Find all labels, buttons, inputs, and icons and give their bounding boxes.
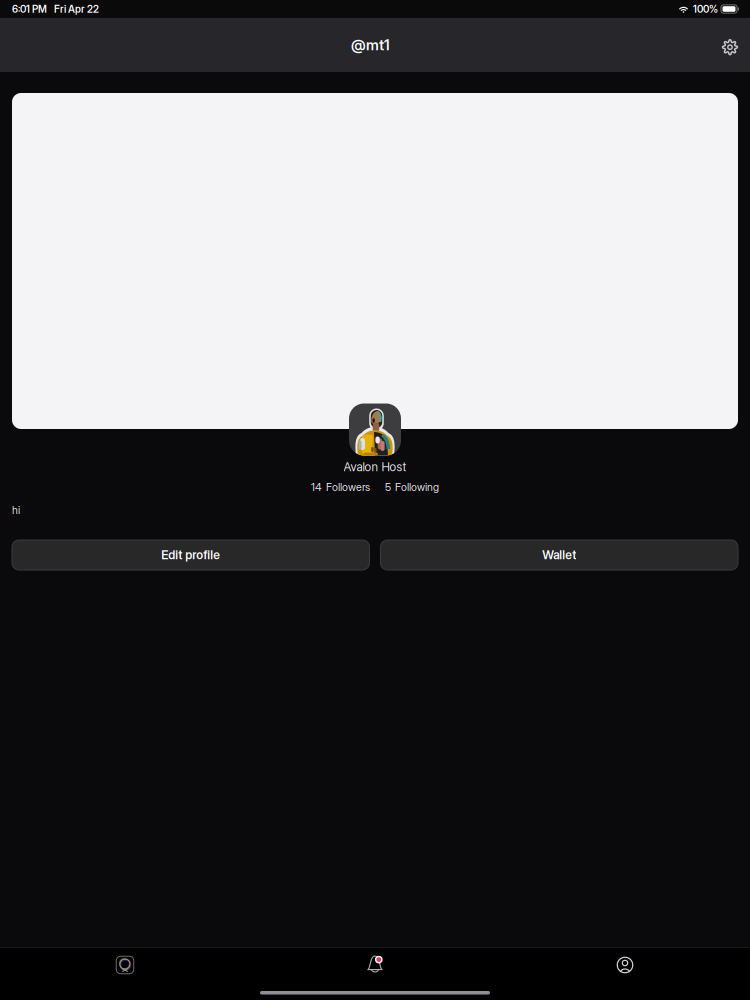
staticText: 6:01 PM xyxy=(12,3,47,15)
staticText: Following xyxy=(395,480,439,493)
staticText: Edit profile xyxy=(161,548,220,562)
staticText: @mt1 xyxy=(351,36,390,54)
staticText: Followers xyxy=(326,480,370,493)
button[interactable]: Wallet xyxy=(380,540,738,570)
staticText: 100% xyxy=(693,3,718,15)
button[interactable]: Settings xyxy=(712,27,748,63)
staticText: hi xyxy=(12,503,20,516)
staticText: Fri Apr 22 xyxy=(54,3,99,15)
button[interactable]: Edit profile xyxy=(12,540,369,570)
staticText: Avalon Host xyxy=(343,460,406,474)
staticText: Wallet xyxy=(542,548,576,562)
button[interactable]: Home xyxy=(0,943,250,987)
button[interactable]: Notifications xyxy=(250,943,500,987)
staticText: 14 xyxy=(311,480,322,493)
staticText: 5 xyxy=(385,480,391,493)
button[interactable]: Profile xyxy=(500,943,750,987)
